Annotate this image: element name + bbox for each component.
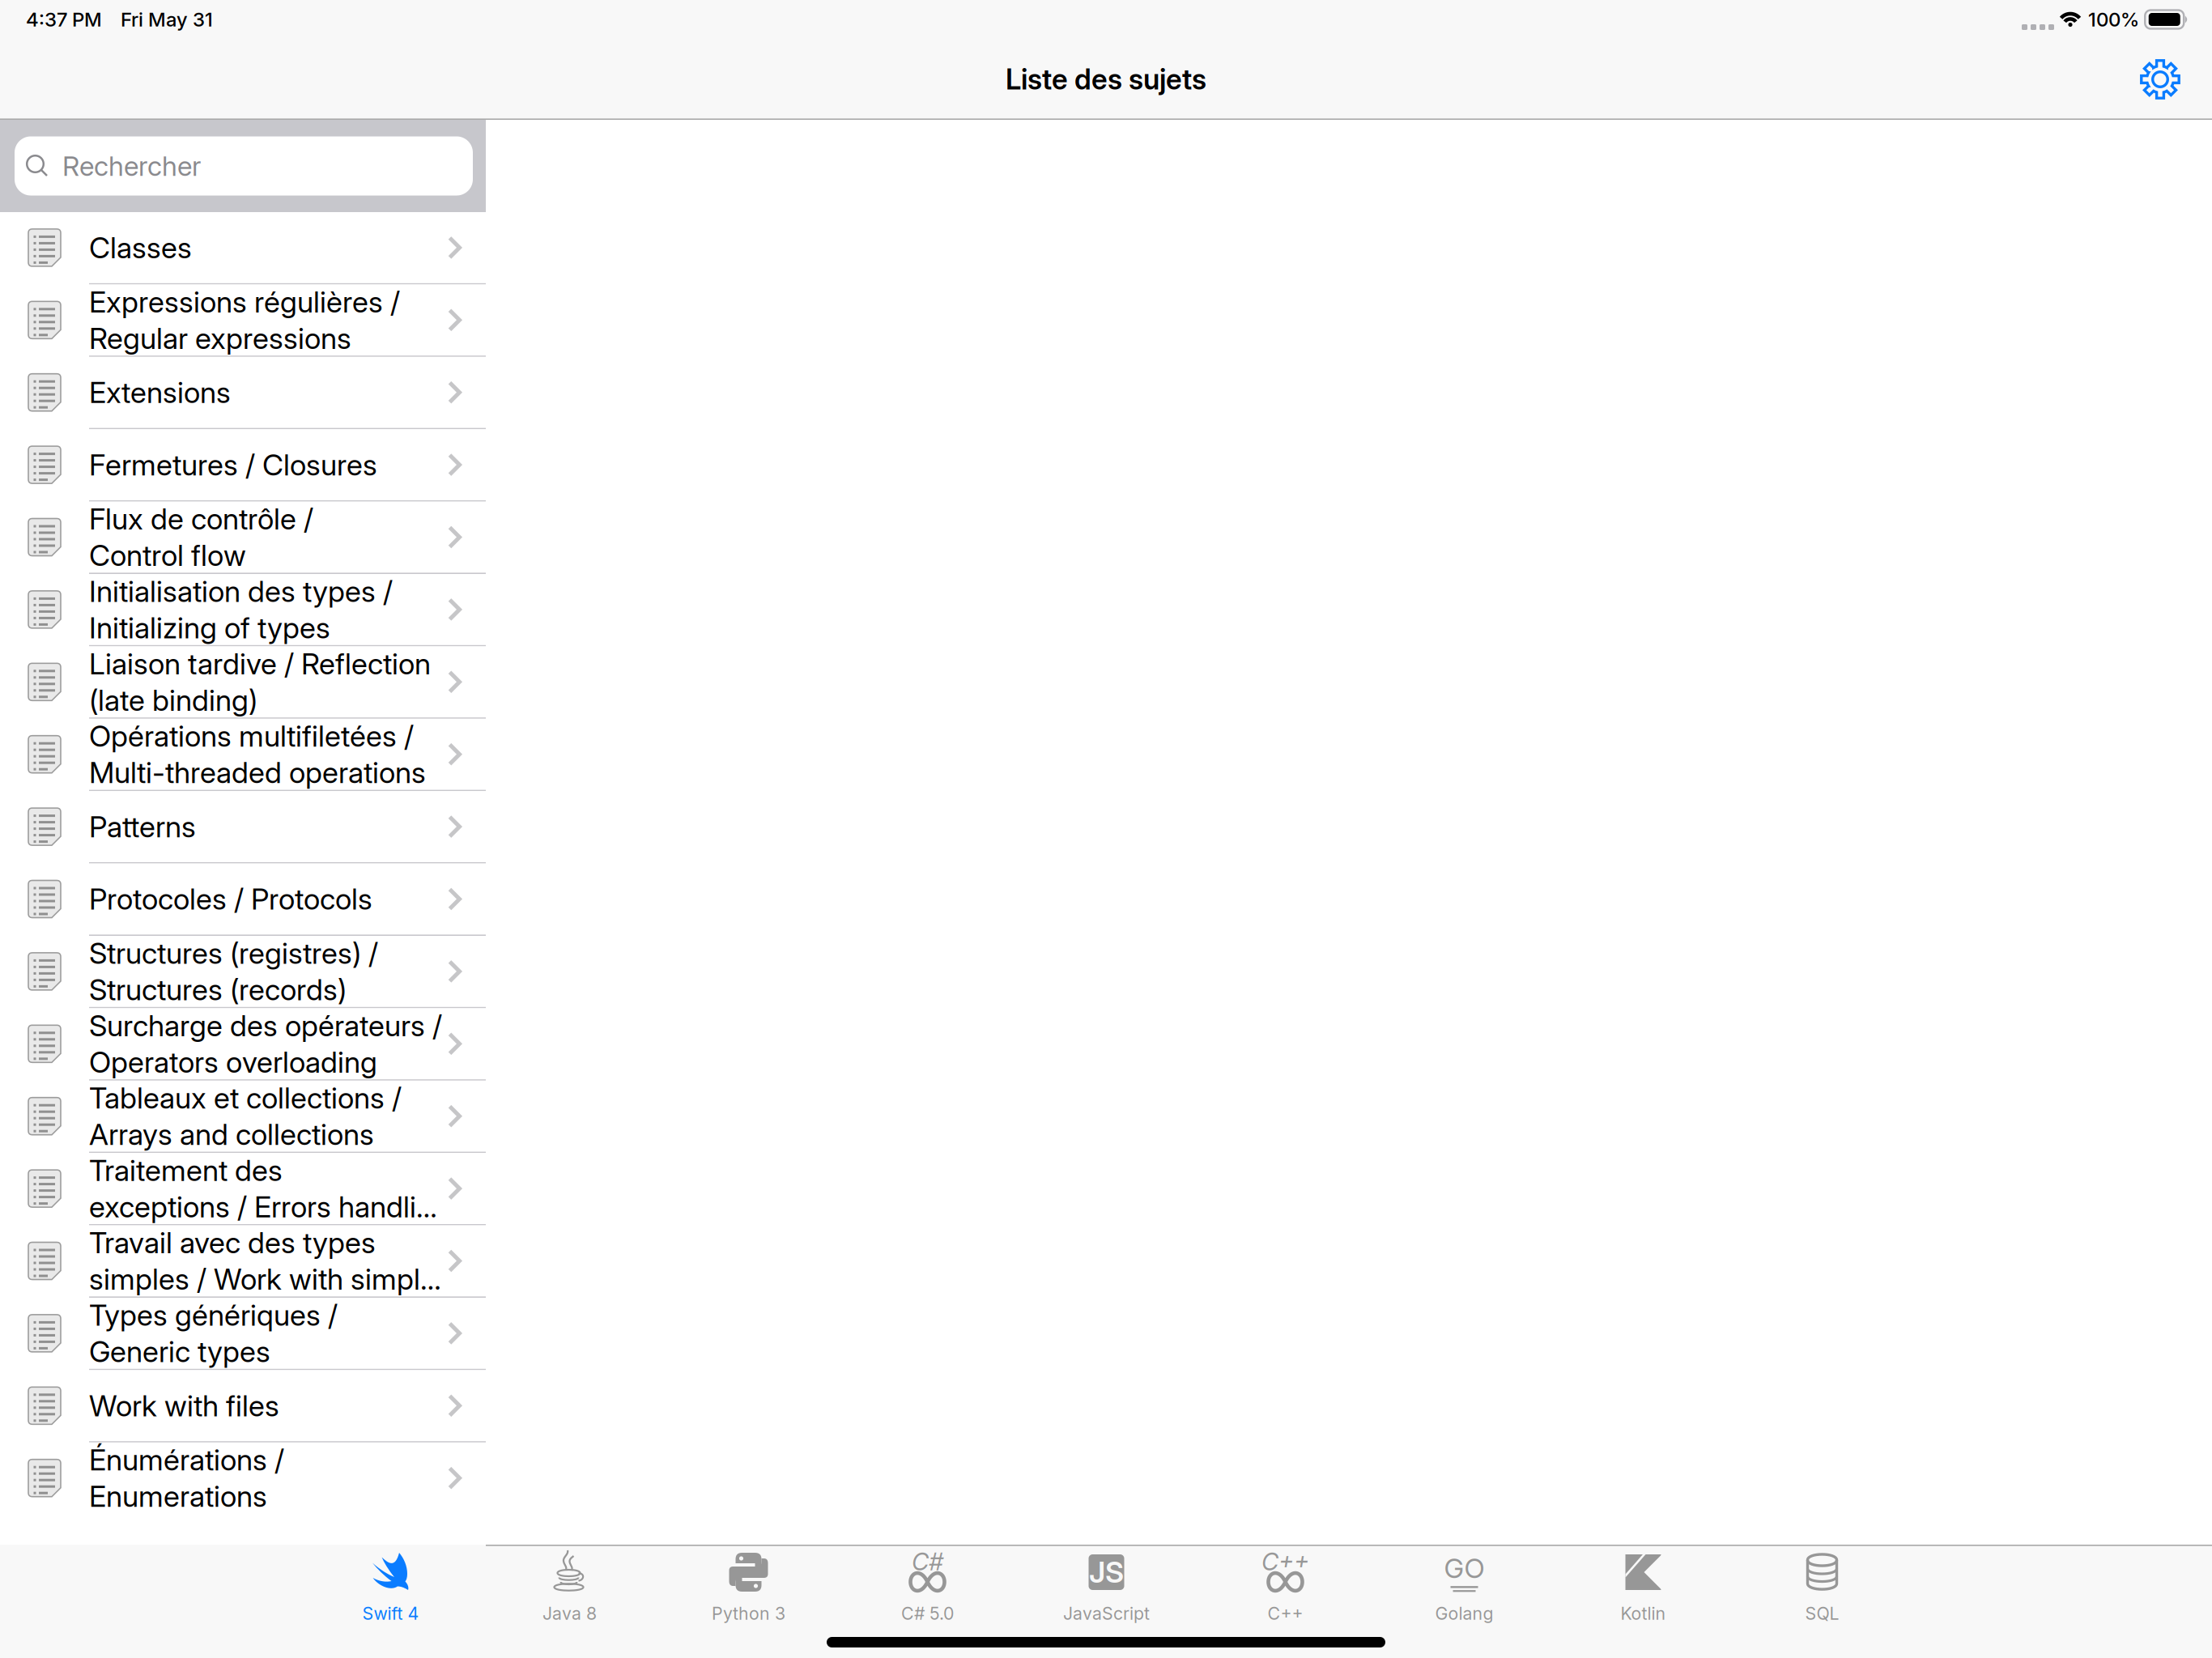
button[interactable]: Travail avec des types (0, 1225, 486, 1296)
button[interactable]: Expressions régulières / (0, 284, 486, 356)
button[interactable]: Fermetures / Closures (0, 429, 486, 500)
button[interactable]: C++ (1196, 1545, 1375, 1658)
staticText: Classes (89, 230, 192, 265)
staticText: Initialisation des types / (89, 574, 393, 609)
staticText: Generic types (89, 1334, 270, 1369)
staticText: Structures (registres) / (89, 936, 378, 971)
staticText: Énumérations / (89, 1442, 284, 1477)
staticText: simples / Work with simpl… (89, 1261, 441, 1297)
staticText: Enumerations (89, 1479, 267, 1514)
staticText: Golang (1435, 1603, 1493, 1624)
button[interactable]: Extensions (0, 357, 486, 428)
staticText: Structures (records) (89, 972, 347, 1007)
button[interactable]: Surcharge des opérateurs / (0, 1008, 486, 1079)
staticText: Patterns (89, 809, 196, 844)
button[interactable]: GO (1375, 1545, 1554, 1658)
staticText: Rechercher (62, 150, 201, 182)
button[interactable]: Liaison tardive / Reflection (0, 646, 486, 717)
staticText: Python 3 (712, 1603, 785, 1624)
staticText: Extensions (89, 375, 231, 410)
button[interactable]: Kotlin (1554, 1545, 1733, 1658)
staticText: Java 8 (542, 1603, 597, 1624)
staticText: Work with files (89, 1388, 279, 1423)
staticText: Liaison tardive / Reflection (89, 646, 431, 681)
staticText: Types génériques / (89, 1297, 338, 1333)
button[interactable]: Traitement des (0, 1153, 486, 1224)
button[interactable]: Java 8 (480, 1545, 659, 1658)
staticText: 4:37 PM (26, 8, 102, 31)
staticText: Operators overloading (89, 1044, 377, 1080)
staticText: Protocoles / Protocols (89, 881, 372, 917)
staticText: Traitement des (89, 1153, 283, 1188)
staticText: JS (1089, 1555, 1124, 1590)
button[interactable]: Protocoles / Protocols (0, 863, 486, 935)
staticText: C++ (1261, 1547, 1309, 1576)
button[interactable]: Patterns (0, 791, 486, 862)
staticText: Control flow (89, 538, 246, 573)
staticText: Regular expressions (89, 321, 351, 356)
staticText: Flux de contrôle / (89, 501, 313, 537)
staticText: Kotlin (1621, 1603, 1666, 1624)
button[interactable]: Flux de contrôle / (0, 502, 486, 573)
staticText: Arrays and collections (89, 1117, 374, 1152)
staticText: C# (912, 1547, 943, 1576)
staticText: Liste des sujets (1006, 62, 1206, 96)
staticText: Fermetures / Closures (89, 447, 377, 482)
staticText: Tableaux et collections / (89, 1080, 402, 1116)
staticText: C# 5.0 (901, 1603, 954, 1624)
button[interactable]: JS (1017, 1545, 1196, 1658)
button[interactable]: Settings (2121, 40, 2199, 118)
button[interactable]: Structures (registres) / (0, 936, 486, 1007)
staticText: (late binding) (89, 682, 257, 718)
button[interactable]: Tableaux et collections / (0, 1081, 486, 1152)
staticText: JavaScript (1063, 1603, 1150, 1624)
staticText: Multi-threaded operations (89, 755, 426, 790)
staticText: Swift 4 (362, 1603, 419, 1624)
staticText: C++ (1268, 1603, 1303, 1624)
staticText: Expressions régulières / (89, 284, 400, 319)
button[interactable]: C# (838, 1545, 1017, 1658)
staticText: Opérations multifiletées / (89, 718, 414, 754)
button[interactable]: Opérations multifiletées / (0, 719, 486, 790)
staticText: 100% (2088, 8, 2139, 31)
button[interactable]: Python 3 (659, 1545, 838, 1658)
staticText: Fri May 31 (121, 8, 213, 31)
button[interactable]: Énumérations / (0, 1442, 486, 1514)
staticText: exceptions / Errors handli… (89, 1189, 437, 1224)
button[interactable]: Initialisation des types / (0, 574, 486, 645)
button[interactable]: Work with files (0, 1370, 486, 1441)
staticText: Initializing of types (89, 610, 330, 645)
staticText: Surcharge des opérateurs / (89, 1008, 442, 1043)
staticText: Travail avec des types (89, 1225, 376, 1260)
staticText: GO (1444, 1552, 1485, 1584)
button[interactable]: SQL (1733, 1545, 1912, 1658)
button[interactable]: Classes (0, 212, 486, 283)
button[interactable]: Swift 4 (301, 1545, 480, 1658)
button[interactable]: Types génériques / (0, 1298, 486, 1369)
staticText: SQL (1805, 1603, 1839, 1624)
